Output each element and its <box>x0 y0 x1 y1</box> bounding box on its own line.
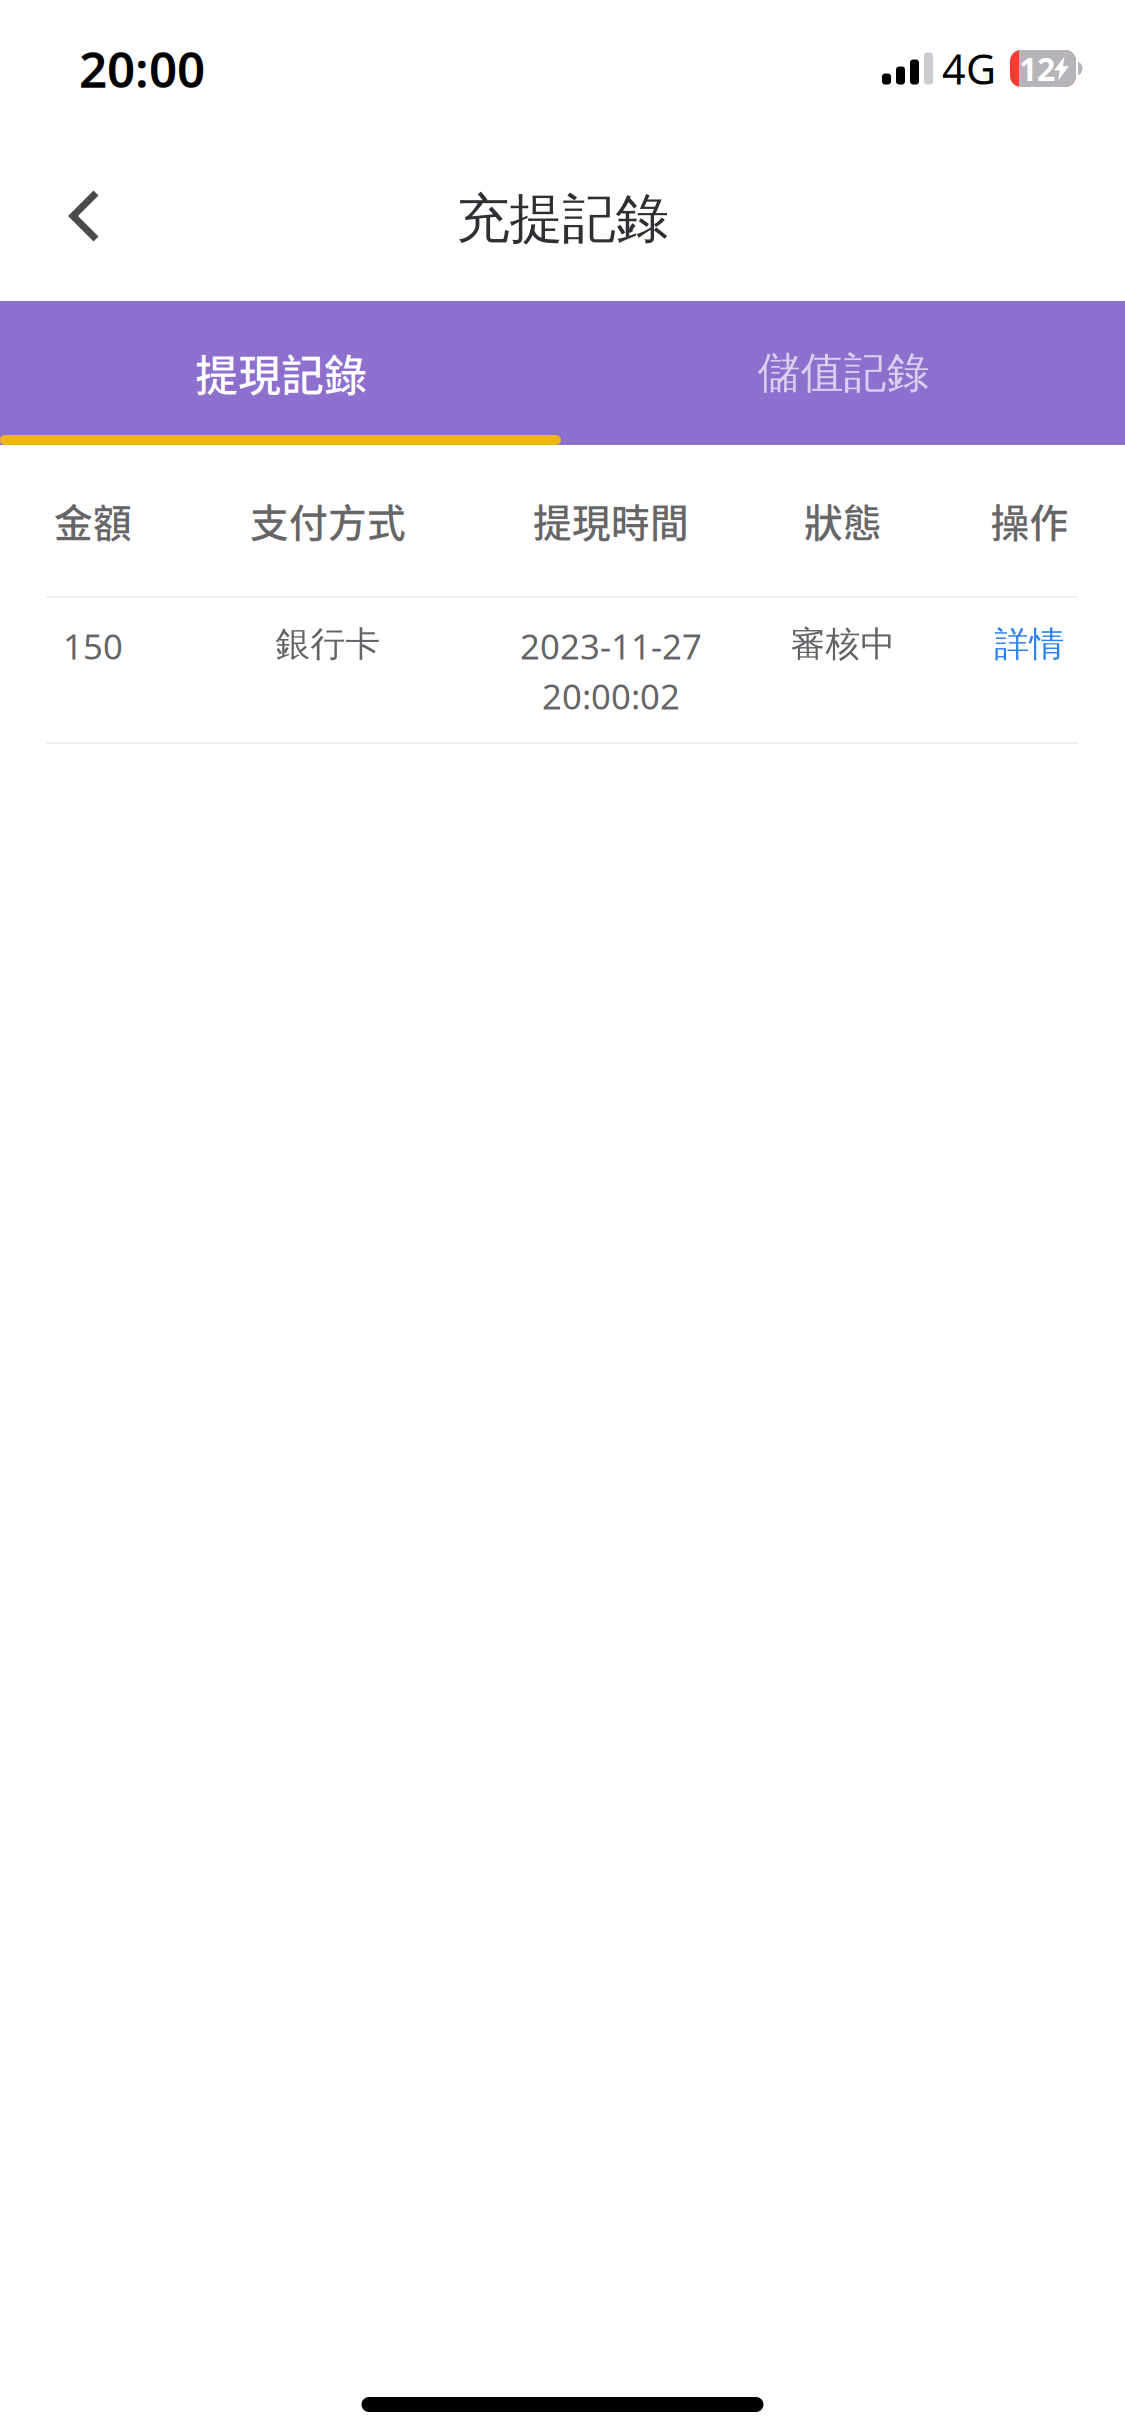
button[interactable]: Back <box>0 162 137 276</box>
staticText: 儲值記錄 <box>758 347 930 399</box>
staticText: 20:00:02 <box>542 673 680 719</box>
button[interactable]: 儲值記錄 <box>562 301 1125 445</box>
button[interactable]: 提現記錄 <box>0 301 562 445</box>
staticText: 2023-11-27 <box>520 623 702 669</box>
staticText: 支付方式 <box>250 492 406 548</box>
staticText: 狀態 <box>804 492 882 548</box>
staticText: 150 <box>63 623 123 669</box>
staticText: 充提記錄 <box>456 186 668 252</box>
staticText: 審核中 <box>790 623 895 666</box>
staticText: 詳情 <box>994 623 1064 666</box>
staticText: 4G <box>942 41 996 96</box>
staticText: 12 <box>1019 47 1055 90</box>
staticText: 20:00 <box>79 36 205 101</box>
staticText: 提現記錄 <box>195 342 367 404</box>
button[interactable]: 詳情 <box>934 623 1125 683</box>
staticText: 銀行卡 <box>275 623 380 666</box>
staticText: 金額 <box>54 492 132 548</box>
staticText: 操作 <box>990 492 1068 548</box>
staticText: 提現時間 <box>533 492 689 548</box>
